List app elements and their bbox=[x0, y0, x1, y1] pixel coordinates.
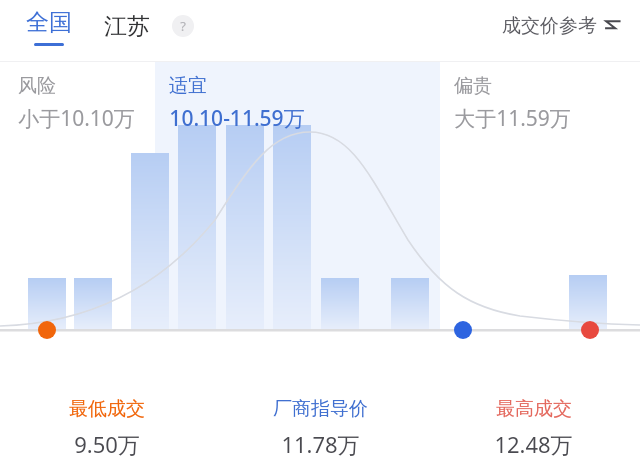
button[interactable]: 最低成交 bbox=[0, 397, 214, 459]
staticText: 12.48万 bbox=[494, 429, 573, 459]
staticText: 最低成交 bbox=[69, 397, 145, 421]
button[interactable]: 最高成交 bbox=[427, 397, 640, 459]
staticText: 11.78万 bbox=[281, 429, 360, 459]
button[interactable]: Help bbox=[172, 15, 194, 37]
staticText: ? bbox=[180, 17, 186, 35]
staticText: 全国 bbox=[26, 8, 72, 37]
staticText: 偏贵 bbox=[454, 74, 492, 98]
staticText: 最高成交 bbox=[496, 397, 572, 421]
staticText: 风险 bbox=[18, 74, 56, 98]
button[interactable]: 江苏 bbox=[96, 4, 158, 49]
staticText: 江苏 bbox=[104, 12, 150, 41]
staticText: 小于10.10万 bbox=[18, 104, 135, 133]
staticText: 10.10-11.59万 bbox=[169, 104, 305, 133]
staticText: 成交价参考 bbox=[502, 14, 597, 38]
staticText: 大于11.59万 bbox=[454, 104, 571, 133]
button[interactable]: 厂商指导价 bbox=[214, 397, 427, 459]
button[interactable]: 全国 bbox=[0, 0, 82, 52]
button[interactable]: 成交价参考 bbox=[494, 6, 640, 46]
staticText: 厂商指导价 bbox=[273, 397, 368, 421]
staticText: 9.50万 bbox=[74, 429, 140, 459]
staticText: 适宜 bbox=[169, 74, 207, 98]
